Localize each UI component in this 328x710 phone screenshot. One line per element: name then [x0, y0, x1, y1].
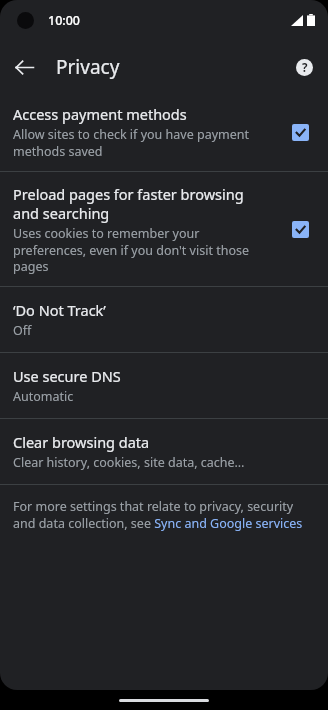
- staticText: ?: [302, 60, 308, 76]
- staticText: Off: [13, 322, 32, 339]
- staticText: ‘Do Not Track’: [13, 300, 106, 320]
- staticText: Clear browsing data: [13, 432, 150, 452]
- staticText: Automatic: [13, 388, 74, 405]
- button[interactable]: Help: [286, 49, 322, 85]
- button[interactable]: For more settings that relate to privacy…: [0, 485, 328, 546]
- button[interactable]: Back: [6, 49, 42, 85]
- staticText: 10:00: [48, 12, 81, 29]
- button[interactable]: Preload pages for faster browsing and se…: [0, 172, 328, 286]
- button[interactable]: Use secure DNS: [0, 353, 328, 418]
- button[interactable]: Access payment methods: [282, 114, 318, 150]
- staticText: Uses cookies to remember your preference…: [13, 225, 272, 274]
- button[interactable]: Preload pages for faster browsing and se…: [282, 211, 318, 247]
- staticText: Allow sites to check if you have payment…: [13, 126, 272, 159]
- staticText: For more settings that relate to privacy…: [13, 498, 312, 532]
- button[interactable]: Clear browsing data: [0, 419, 328, 484]
- button[interactable]: Access payment methods: [0, 93, 328, 171]
- staticText: Clear history, cookies, site data, cache…: [13, 454, 245, 471]
- staticText: Privacy: [56, 54, 120, 80]
- button[interactable]: ‘Do Not Track’: [0, 287, 328, 352]
- staticText: Access payment methods: [13, 104, 187, 124]
- staticText: Use secure DNS: [13, 366, 121, 386]
- staticText: Preload pages for faster browsing and se…: [13, 184, 272, 223]
